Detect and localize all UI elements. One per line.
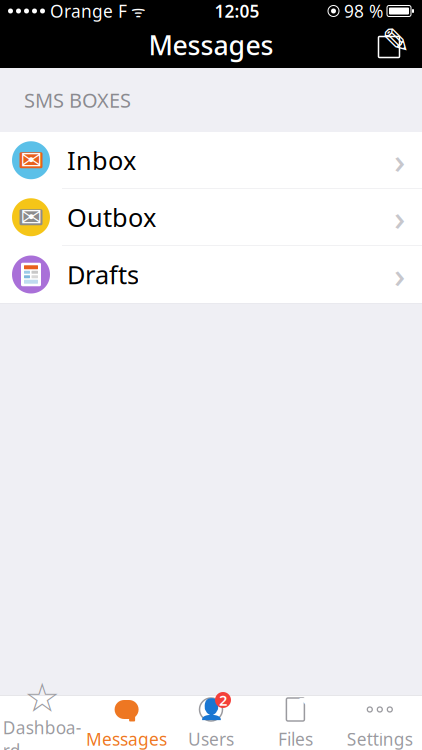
staticText: Settings — [347, 727, 413, 750]
staticText: › — [394, 194, 405, 240]
staticText: ᯤ — [127, 0, 146, 22]
staticText: Drafts — [67, 258, 139, 291]
staticText: Orange F — [45, 0, 127, 22]
staticText: Files — [278, 727, 313, 750]
button[interactable]: ◥ — [253, 690, 338, 750]
staticText: ✉ — [20, 146, 41, 175]
staticText: ✎ — [381, 21, 410, 61]
button[interactable]: Messages — [84, 690, 169, 750]
staticText: SMS BOXES — [24, 87, 131, 113]
staticText: Messages — [86, 727, 167, 750]
button[interactable]: Compose — [374, 28, 422, 62]
button[interactable]: ✉ — [0, 132, 422, 189]
staticText: ✉ — [20, 203, 41, 232]
button[interactable]: ☆ — [0, 679, 84, 750]
staticText: Outbox — [67, 200, 156, 234]
button[interactable]: Drafts — [0, 246, 422, 303]
button[interactable]: 👤 — [169, 690, 253, 750]
button[interactable]: ✉ — [0, 189, 422, 246]
staticText: › — [394, 251, 405, 297]
staticText: › — [394, 137, 405, 183]
staticText: Dashboard — [3, 716, 82, 750]
staticText: 98 % — [344, 0, 383, 22]
button[interactable]: Settings — [338, 690, 422, 750]
staticText: ☆ — [24, 675, 60, 721]
staticText: 👤 — [198, 698, 223, 721]
staticText: 12:05 — [214, 0, 259, 22]
staticText: Messages — [148, 27, 273, 63]
staticText: 2 — [219, 690, 227, 710]
staticText: ◥ — [299, 695, 308, 708]
staticText: Users — [188, 727, 234, 750]
staticText: Inbox — [67, 143, 136, 177]
